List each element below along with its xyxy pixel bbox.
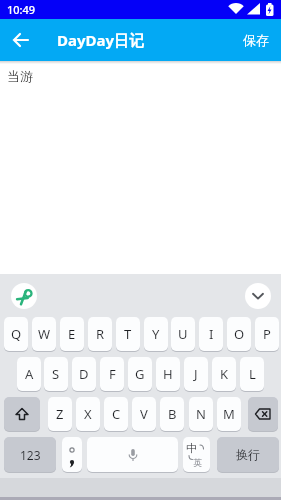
staticText: A: [25, 365, 34, 383]
staticText: 英: [193, 457, 202, 468]
button[interactable]: [245, 283, 271, 309]
staticText: C: [112, 405, 121, 423]
button[interactable]: [87, 437, 178, 472]
staticText: R: [96, 325, 105, 343]
button[interactable]: [11, 283, 37, 309]
button[interactable]: 中: [183, 437, 210, 472]
staticText: Y: [152, 325, 160, 343]
staticText: M: [223, 405, 235, 423]
staticText: T: [124, 325, 132, 343]
button[interactable]: O: [227, 317, 251, 351]
staticText: P: [263, 325, 271, 343]
staticText: N: [196, 405, 206, 423]
staticText: O: [234, 325, 245, 343]
button[interactable]: F: [100, 357, 124, 391]
staticText: H: [163, 365, 173, 383]
button[interactable]: I: [199, 317, 223, 351]
staticText: 123: [20, 447, 41, 463]
staticText: F: [109, 365, 116, 383]
button[interactable]: S: [44, 357, 68, 391]
button[interactable]: V: [132, 397, 156, 431]
button[interactable]: P: [255, 317, 279, 351]
button[interactable]: 换行: [217, 437, 279, 472]
button[interactable]: K: [212, 357, 236, 391]
staticText: I: [209, 325, 214, 343]
button[interactable]: L: [240, 357, 264, 391]
staticText: K: [220, 365, 229, 383]
staticText: J: [194, 365, 198, 383]
staticText: 保存: [243, 32, 269, 48]
button[interactable]: [62, 437, 82, 472]
button[interactable]: 保存: [243, 32, 269, 48]
button[interactable]: M: [217, 397, 241, 431]
button[interactable]: A: [17, 357, 41, 391]
button[interactable]: X: [76, 397, 100, 431]
staticText: X: [84, 405, 92, 423]
staticText: 10:49: [7, 2, 36, 17]
staticText: 换行: [236, 447, 260, 462]
staticText: B: [168, 405, 177, 423]
staticText: V: [140, 405, 148, 423]
button[interactable]: G: [128, 357, 152, 391]
button[interactable]: W: [32, 317, 56, 351]
button[interactable]: B: [160, 397, 184, 431]
button[interactable]: [248, 397, 278, 431]
button[interactable]: C: [104, 397, 128, 431]
staticText: W: [38, 325, 51, 343]
button[interactable]: U: [171, 317, 195, 351]
button[interactable]: Z: [48, 397, 72, 431]
button[interactable]: Y: [144, 317, 168, 351]
staticText: DayDay日记: [57, 30, 145, 50]
staticText: L: [249, 365, 256, 383]
button[interactable]: J: [184, 357, 208, 391]
staticText: S: [52, 365, 60, 383]
button[interactable]: H: [156, 357, 180, 391]
staticText: E: [68, 325, 76, 343]
staticText: Z: [56, 405, 64, 423]
button[interactable]: T: [116, 317, 140, 351]
button[interactable]: 123: [4, 437, 56, 472]
staticText: U: [178, 325, 188, 343]
button[interactable]: R: [88, 317, 112, 351]
button[interactable]: D: [72, 357, 96, 391]
button[interactable]: Q: [4, 317, 28, 351]
staticText: Q: [11, 325, 22, 343]
button[interactable]: N: [189, 397, 213, 431]
staticText: G: [135, 365, 145, 383]
staticText: 中: [186, 441, 197, 455]
button[interactable]: E: [60, 317, 84, 351]
staticText: D: [79, 365, 89, 383]
button[interactable]: [7, 26, 35, 54]
staticText: 当游: [7, 68, 33, 84]
button[interactable]: [4, 397, 40, 431]
